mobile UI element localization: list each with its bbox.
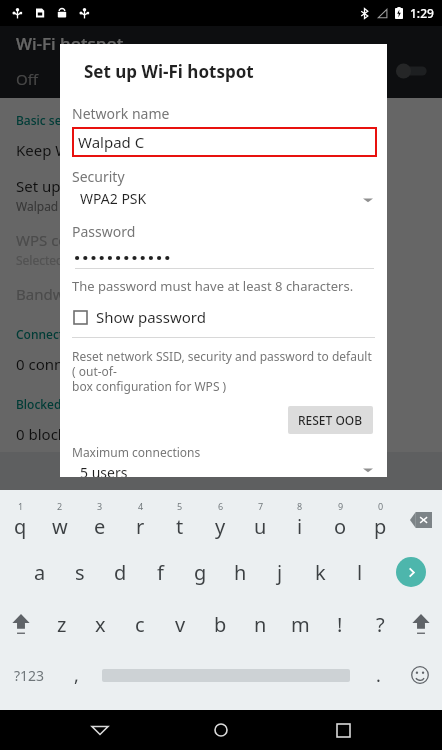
button[interactable]: Emoji (398, 650, 442, 700)
button[interactable]: 8 (280, 494, 320, 546)
button[interactable]: Walpad C (72, 127, 377, 157)
button[interactable]: 5 users (60, 463, 387, 477)
button[interactable]: z (42, 598, 81, 650)
staticText: h (234, 559, 247, 586)
button[interactable]: Shift (0, 598, 42, 650)
staticText: k (315, 559, 326, 586)
button[interactable]: ? (360, 598, 400, 650)
staticText: x (95, 611, 106, 638)
button[interactable]: 4 (120, 494, 160, 546)
staticText: w (52, 513, 68, 540)
button[interactable]: 1 (0, 494, 40, 546)
staticText: 3 (97, 500, 103, 512)
staticText: j (277, 559, 283, 586)
staticText: p (374, 513, 387, 540)
button[interactable]: Home (199, 710, 243, 750)
staticText: 5 (177, 500, 183, 512)
staticText: Connected users (16, 326, 112, 342)
button[interactable]: 7 (240, 494, 280, 546)
button[interactable]: x (81, 598, 120, 650)
staticText: q (14, 513, 27, 540)
staticText: 5 users (80, 463, 128, 477)
staticText: 6 (218, 500, 224, 512)
staticText: l (357, 559, 363, 586)
button[interactable]: 9 (320, 494, 360, 546)
button[interactable] (75, 247, 374, 269)
button[interactable]: ?123 (0, 650, 58, 700)
button[interactable]: Bandwidth (0, 276, 442, 312)
staticText: 7 (258, 500, 264, 512)
button[interactable]: 5 (160, 494, 200, 546)
staticText: Maximum connections (72, 444, 201, 460)
staticText: ! (337, 611, 343, 638)
staticText: 1 (18, 500, 24, 512)
button[interactable]: a (20, 546, 60, 598)
button[interactable]: Recents (321, 710, 365, 750)
button[interactable]: d (100, 546, 140, 598)
staticText: WPS connect (16, 230, 108, 250)
staticText: WPA2 PSK (80, 189, 147, 208)
button[interactable]: 0 (360, 494, 400, 546)
staticText: e (94, 513, 106, 540)
button[interactable]: g (180, 546, 220, 598)
staticText: 0 blocked users (16, 424, 126, 444)
button[interactable]: Shift (400, 598, 442, 650)
button[interactable]: . (358, 650, 398, 700)
button[interactable]: Hotspot toggle (394, 62, 428, 80)
button[interactable]: WPA2 PSK (60, 189, 387, 211)
button[interactable]: s (60, 546, 100, 598)
staticText: z (57, 611, 67, 638)
button[interactable]: m (280, 598, 320, 650)
button[interactable]: 6 (200, 494, 240, 546)
button[interactable]: Backspace (400, 494, 442, 546)
staticText: Keep Wi-Fi hotspot on (16, 140, 171, 160)
staticText: 2 (57, 500, 63, 512)
button[interactable]: j (260, 546, 300, 598)
button[interactable]: WPS connect (0, 222, 442, 276)
staticText: u (254, 513, 267, 540)
staticText: Reset network SSID, security and passwor… (72, 348, 377, 394)
staticText: Blocked users (16, 396, 96, 412)
button[interactable]: Back (78, 710, 122, 750)
button[interactable]: v (160, 598, 200, 650)
button[interactable]: l (340, 546, 380, 598)
button[interactable]: Enter (380, 546, 442, 598)
staticText: 0 connected users (16, 354, 145, 374)
staticText: f (157, 559, 164, 586)
staticText: g (194, 559, 207, 586)
staticText: ?123 (14, 666, 45, 685)
staticText: c (135, 611, 145, 638)
button[interactable]: 3 (80, 494, 120, 546)
button[interactable]: RESET OOB (288, 406, 373, 434)
staticText: r (136, 513, 145, 540)
staticText: Set up Wi-Fi hotspot (16, 176, 158, 196)
staticText: 0 (378, 500, 384, 512)
staticText: 9 (338, 500, 344, 512)
button[interactable]: 0 connected users (0, 346, 442, 382)
button[interactable]: Set up Wi-Fi hotspot (0, 168, 442, 222)
button[interactable]: n (240, 598, 280, 650)
staticText: RESET OOB (298, 412, 363, 428)
button[interactable]: f (140, 546, 180, 598)
button[interactable]: b (200, 598, 240, 650)
button[interactable]: ! (320, 598, 360, 650)
staticText: y (215, 513, 226, 540)
staticText: , (74, 663, 79, 688)
staticText: The password must have at least 8 charac… (72, 277, 354, 295)
button[interactable]: c (120, 598, 160, 650)
button[interactable]: 0 blocked users (0, 416, 442, 452)
staticText: 4 (138, 500, 144, 512)
staticText: i (297, 513, 303, 540)
button[interactable]: Space (94, 650, 358, 700)
button[interactable]: h (220, 546, 260, 598)
button[interactable]: , (58, 650, 94, 700)
button[interactable]: k (300, 546, 340, 598)
staticText: d (114, 559, 127, 586)
staticText: Walpad C WPA2 PSK portable Wi-Fi hotspot (16, 198, 258, 214)
staticText: Bandwidth (16, 284, 93, 304)
staticText: o (334, 513, 347, 540)
button[interactable]: 2 (40, 494, 80, 546)
button[interactable]: Keep Wi-Fi hotspot on (0, 132, 442, 168)
button[interactable]: Show password (60, 307, 387, 327)
staticText: a (34, 559, 46, 586)
